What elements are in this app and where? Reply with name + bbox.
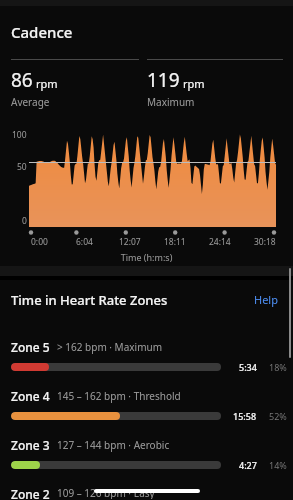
staticText: Average [11,95,50,109]
staticText: 109 – 126 bpm · Easy [57,486,155,499]
staticText: Zone 2 [11,486,50,500]
staticText: 50 [17,161,27,173]
staticText: Help [254,292,278,307]
button[interactable]: Zone 5 [0,339,293,373]
staticText: 0 [22,215,27,227]
staticText: 18% [269,361,287,373]
button[interactable]: Zone 2 [0,486,293,500]
staticText: 4:27 [239,459,257,471]
button[interactable]: Help [251,290,281,309]
staticText: 14% [269,459,287,471]
staticText: 5:34 [239,361,257,373]
staticText: rpm [36,76,58,91]
staticText: 12:07 [119,236,141,248]
staticText: > 162 bpm · Maximum [57,340,163,354]
staticText: Maximum [147,95,195,109]
staticText: 30:18 [254,236,276,248]
staticText: 18:11 [164,236,186,248]
staticText: Zone 5 [11,339,50,355]
staticText: 86 [11,67,33,93]
button[interactable]: Zone 4 [0,388,293,422]
staticText: 119 [147,67,180,93]
staticText: Cadence [11,22,73,42]
button[interactable]: Zone 3 [0,437,293,471]
staticText: 145 – 162 bpm · Threshold [57,389,181,403]
staticText: Zone 4 [11,388,50,404]
staticText: Zone 3 [11,437,50,453]
staticText: 0:00 [31,236,48,248]
staticText: 15:58 [233,410,257,422]
staticText: Time in Heart Rate Zones [11,291,251,309]
staticText: rpm [183,76,205,91]
staticText: 6:04 [76,236,93,248]
staticText: 24:14 [209,236,231,248]
staticText: 100 [12,129,27,141]
staticText: 52% [269,410,287,422]
staticText: 127 – 144 bpm · Aerobic [57,438,170,452]
staticText: Time (h:m:s) [0,251,293,263]
